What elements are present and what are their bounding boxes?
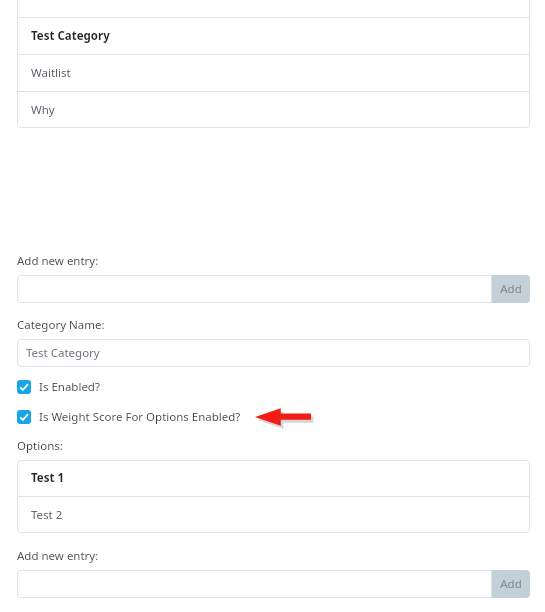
button[interactable] <box>17 275 492 303</box>
staticText: Add <box>500 576 522 592</box>
staticText: Is Weight Score For Options Enabled? <box>39 409 241 425</box>
staticText: Test Category <box>31 28 110 44</box>
button[interactable]: Waitlist <box>17 55 530 91</box>
button[interactable]: Add <box>492 570 530 598</box>
button[interactable]: Test Category <box>17 339 530 367</box>
staticText: Is Enabled? <box>39 379 100 395</box>
staticText: Waitlist <box>31 65 71 81</box>
button[interactable]: Checked checkbox <box>17 380 31 394</box>
staticText: Test 1 <box>31 470 65 486</box>
button[interactable] <box>17 570 492 598</box>
button[interactable]: Why <box>17 92 530 128</box>
button[interactable]: Checked checkbox <box>17 410 31 424</box>
staticText: Add <box>500 281 522 297</box>
staticText: Test Category <box>26 345 100 361</box>
button[interactable]: Test Category <box>17 18 530 54</box>
staticText: Category Name: <box>17 317 105 333</box>
staticText: Test 2 <box>31 507 63 523</box>
staticText: Add new entry: <box>17 548 99 564</box>
staticText: Why <box>31 102 55 118</box>
button[interactable]: Add <box>492 275 530 303</box>
staticText: Add new entry: <box>17 253 99 269</box>
button[interactable]: Test 2 <box>17 497 530 533</box>
staticText: Options: <box>17 438 63 454</box>
button[interactable]: Test 1 <box>17 460 530 496</box>
